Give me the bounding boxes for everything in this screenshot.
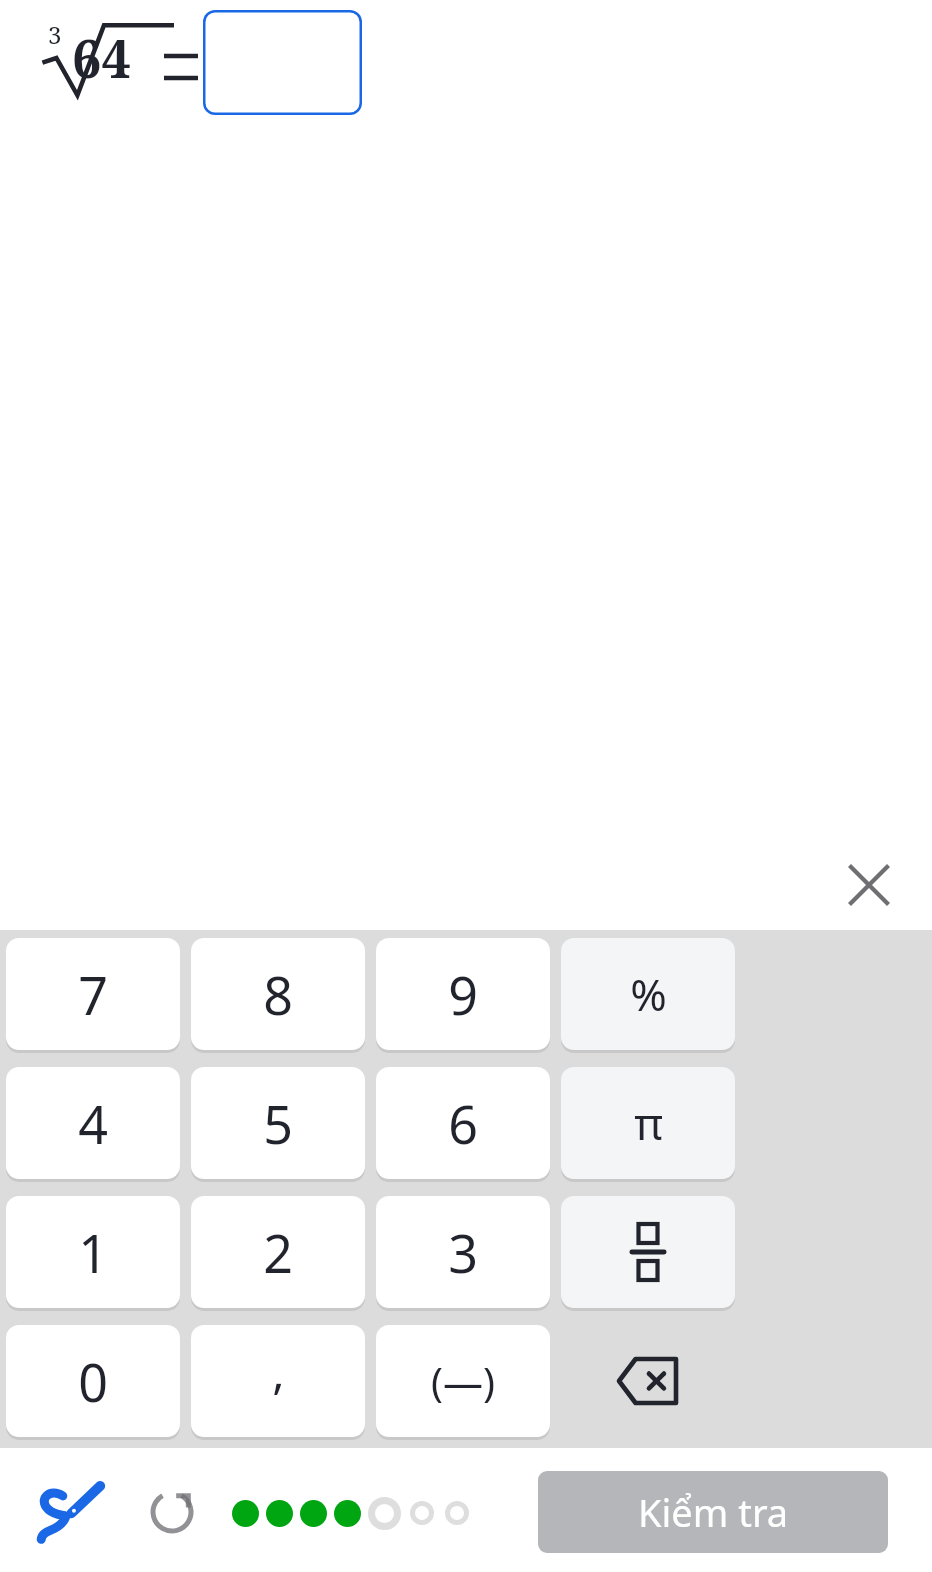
staticText: 3 (48, 18, 62, 51)
button[interactable]: 4 (6, 1067, 180, 1179)
button[interactable]: Percent (561, 938, 735, 1050)
staticText: (—) (431, 1354, 495, 1408)
button[interactable]: Kiểm tra (538, 1471, 888, 1553)
button[interactable]: Comma (191, 1325, 365, 1437)
button[interactable]: 8 (191, 938, 365, 1050)
button[interactable]: Negative (376, 1325, 550, 1437)
staticText: Kiểm tra (638, 1486, 789, 1538)
button[interactable]: Close keypad (836, 852, 902, 918)
staticText: 2 (263, 1217, 293, 1288)
staticText: , (272, 1340, 285, 1403)
button[interactable]: 5 (191, 1067, 365, 1179)
button[interactable]: Pi (561, 1067, 735, 1179)
button[interactable]: Backspace (561, 1325, 735, 1437)
staticText: 3 (448, 1217, 478, 1288)
button[interactable]: 9 (376, 938, 550, 1050)
staticText: 4 (78, 1088, 108, 1159)
staticText: 5 (263, 1088, 293, 1159)
button[interactable]: 2 (191, 1196, 365, 1308)
staticText: % (630, 964, 667, 1024)
button[interactable]: 1 (6, 1196, 180, 1308)
button[interactable]: Answer input (203, 10, 362, 115)
staticText: 8 (263, 959, 293, 1030)
button[interactable]: Draw (22, 1478, 118, 1546)
button[interactable]: 7 (6, 938, 180, 1050)
staticText: 1 (78, 1217, 108, 1288)
button[interactable]: 6 (376, 1067, 550, 1179)
staticText: 7 (78, 959, 108, 1030)
staticText: 64 (72, 22, 131, 93)
button[interactable]: Fraction (561, 1196, 735, 1308)
staticText: 6 (448, 1088, 478, 1159)
staticText: 0 (78, 1346, 108, 1417)
button[interactable]: 0 (6, 1325, 180, 1437)
staticText: 9 (448, 959, 478, 1030)
button[interactable]: 3 (376, 1196, 550, 1308)
button[interactable]: Reset (132, 1478, 212, 1546)
staticText: π (634, 1093, 663, 1153)
